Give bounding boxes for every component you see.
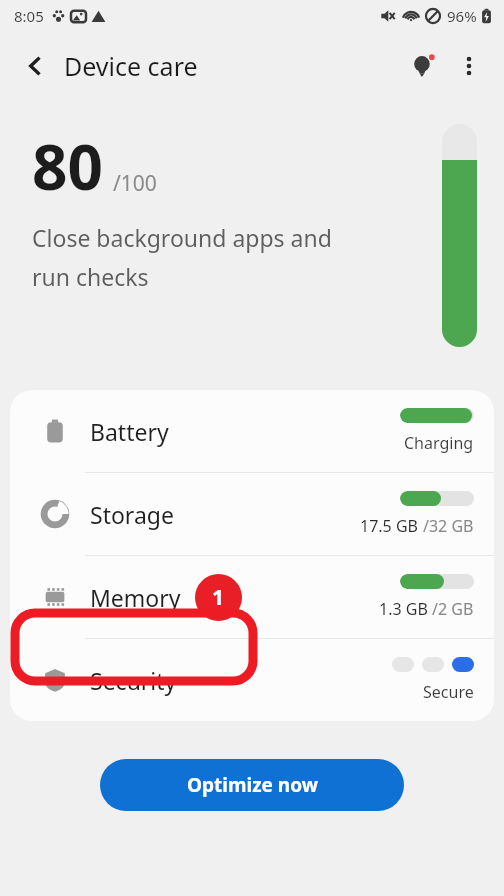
button[interactable]: Tips	[400, 43, 446, 89]
staticText: 8:05	[14, 6, 44, 26]
staticText: Optimize now	[187, 772, 318, 798]
staticText: 1.3 GB	[379, 598, 432, 620]
button[interactable]: Back	[14, 44, 58, 88]
staticText: 96%	[447, 6, 477, 26]
staticText: Memory	[90, 582, 181, 613]
staticText: 1	[212, 583, 225, 612]
staticText: /100	[113, 169, 157, 198]
staticText: Device care	[64, 49, 198, 83]
staticText: Close background apps and	[32, 222, 332, 253]
button[interactable]: Storage	[10, 473, 494, 555]
button[interactable]: Battery	[10, 390, 494, 472]
staticText: 80	[32, 124, 103, 208]
button[interactable]: More options	[446, 43, 492, 89]
staticText: run checks	[32, 261, 149, 292]
staticText: Battery	[90, 416, 169, 447]
staticText: /2 GB	[432, 598, 474, 620]
staticText: Storage	[90, 499, 174, 530]
button[interactable]: Security	[10, 639, 494, 721]
staticText: Charging	[404, 432, 474, 454]
staticText: /32 GB	[423, 515, 474, 537]
staticText: Security	[90, 665, 177, 696]
staticText: Secure	[423, 681, 474, 703]
button[interactable]: Optimize now	[100, 759, 404, 811]
staticText: 17.5 GB	[360, 515, 423, 537]
button[interactable]: Memory	[10, 556, 494, 638]
